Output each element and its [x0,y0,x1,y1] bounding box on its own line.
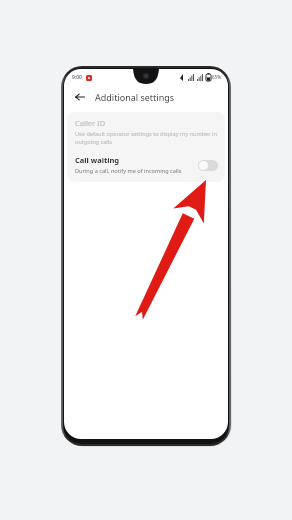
button[interactable]: Back [72,89,88,105]
staticText: 65% [212,74,221,80]
staticText: Additional settings [95,91,175,103]
staticText: Call waiting [75,155,119,165]
staticText: 9:00 [72,74,82,81]
staticText: Caller ID [75,118,106,128]
button[interactable]: Call waiting toggle [198,160,218,171]
staticText: During a call, notify me of incoming cal… [75,167,182,175]
staticText: Use default operator settings to display… [75,130,217,146]
button[interactable]: Caller ID [67,112,225,151]
button[interactable]: Call waiting [67,151,225,182]
